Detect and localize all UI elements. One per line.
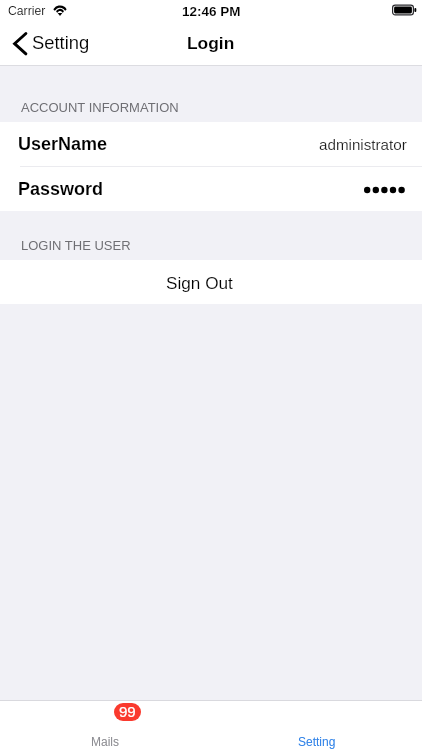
button[interactable]: Setting [211, 700, 422, 750]
staticText: Sign Out [166, 273, 233, 292]
staticText: Login [187, 33, 235, 52]
button[interactable]: Back to Setting [0, 22, 100, 66]
staticText: Mails [91, 735, 120, 748]
staticText: Carrier [8, 4, 46, 18]
staticText: UserName [18, 134, 108, 154]
staticText: LOGIN THE USER [21, 238, 131, 253]
button[interactable]: Password [0, 167, 422, 211]
button[interactable]: 99 [0, 700, 211, 750]
staticText: ACCOUNT INFORMATION [21, 100, 179, 115]
button[interactable]: Sign Out [0, 260, 422, 304]
button[interactable]: UserName [0, 122, 422, 166]
staticText: Password [18, 179, 104, 199]
staticText: administrator [319, 136, 407, 153]
staticText: 12:46 PM [182, 4, 241, 19]
staticText: Setting [298, 735, 336, 748]
staticText: 99 [119, 703, 136, 720]
staticText: Setting [32, 32, 90, 53]
